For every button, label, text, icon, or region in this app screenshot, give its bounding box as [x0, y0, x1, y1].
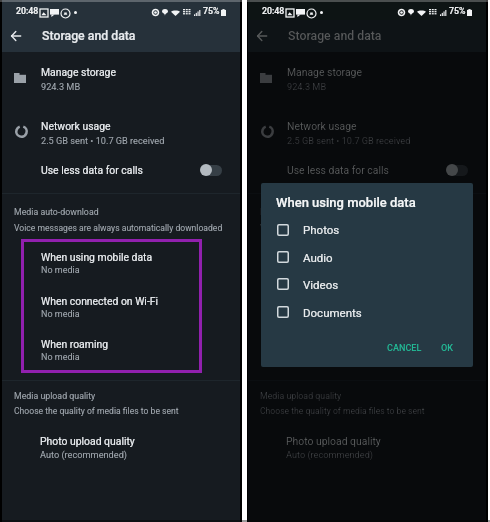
staticText: Manage storage: [287, 66, 362, 78]
staticText: Audio: [303, 251, 333, 264]
button[interactable]: [248, 430, 486, 466]
staticText: Storage and data: [42, 29, 136, 43]
staticText: Network usage: [41, 120, 111, 132]
staticText: Documents: [303, 306, 362, 319]
staticText: Media auto-download: [14, 207, 99, 217]
button[interactable]: [2, 112, 240, 148]
staticText: Voice messages are always automatically …: [14, 223, 223, 233]
staticText: Auto (recommended): [286, 449, 374, 460]
staticText: When using mobile data: [41, 251, 153, 263]
staticText: 75%: [449, 6, 466, 16]
button[interactable]: [23, 245, 200, 285]
staticText: Videos: [303, 278, 339, 291]
button[interactable]: Back: [4, 24, 28, 48]
staticText: When connected on Wi-Fi: [41, 295, 159, 307]
staticText: 924.3 MB: [41, 81, 81, 92]
button[interactable]: [261, 298, 473, 325]
staticText: Choose the quality of media files to be …: [14, 406, 179, 416]
button[interactable]: OK: [433, 335, 459, 355]
staticText: Media upload quality: [260, 391, 342, 401]
staticText: Storage and data: [288, 29, 382, 43]
staticText: Media auto-download: [260, 207, 345, 217]
staticText: Network usage: [287, 120, 357, 132]
staticText: No media: [287, 309, 326, 320]
staticText: Manage storage: [41, 66, 116, 78]
staticText: Use less data for calls: [41, 164, 143, 176]
staticText: 20:48: [262, 6, 285, 16]
button[interactable]: [261, 243, 473, 270]
staticText: 2.5 GB sent • 10.7 GB received: [287, 135, 411, 146]
button[interactable]: [269, 334, 446, 372]
button[interactable]: [2, 156, 240, 186]
staticText: When connected on Wi-Fi: [287, 295, 405, 307]
button[interactable]: CANCEL: [381, 335, 427, 355]
staticText: No media: [41, 309, 80, 320]
button[interactable]: [23, 290, 200, 330]
staticText: No media: [41, 352, 80, 363]
button[interactable]: Back: [250, 24, 274, 48]
staticText: 924.3 MB: [287, 81, 327, 92]
staticText: When using mobile data: [287, 251, 399, 263]
button[interactable]: [248, 156, 486, 186]
staticText: Media upload quality: [14, 391, 96, 401]
staticText: 75%: [203, 6, 220, 16]
staticText: OK: [441, 343, 454, 354]
staticText: CANCEL: [387, 343, 422, 354]
staticText: Photo upload quality: [286, 435, 381, 447]
staticText: When using mobile data: [276, 195, 416, 210]
staticText: When roaming: [41, 338, 108, 350]
button[interactable]: [2, 58, 240, 94]
button[interactable]: [269, 245, 446, 285]
button[interactable]: [269, 290, 446, 330]
staticText: Voice messages are always automatically …: [260, 223, 469, 233]
staticText: 20:48: [16, 6, 39, 16]
button[interactable]: [248, 58, 486, 94]
button[interactable]: [261, 216, 473, 243]
staticText: Photos: [303, 223, 340, 236]
staticText: Use less data for calls: [287, 164, 389, 176]
button[interactable]: [23, 334, 200, 372]
button[interactable]: [2, 430, 240, 466]
staticText: No media: [41, 265, 80, 276]
button[interactable]: [248, 112, 486, 148]
staticText: Auto (recommended): [40, 449, 128, 460]
staticText: Choose the quality of media files to be …: [260, 406, 425, 416]
staticText: Photo upload quality: [40, 435, 135, 447]
button[interactable]: Use less data for calls: [446, 162, 468, 178]
button[interactable]: Use less data for calls: [200, 162, 222, 178]
button[interactable]: [261, 271, 473, 298]
staticText: 2.5 GB sent • 10.7 GB received: [41, 135, 165, 146]
